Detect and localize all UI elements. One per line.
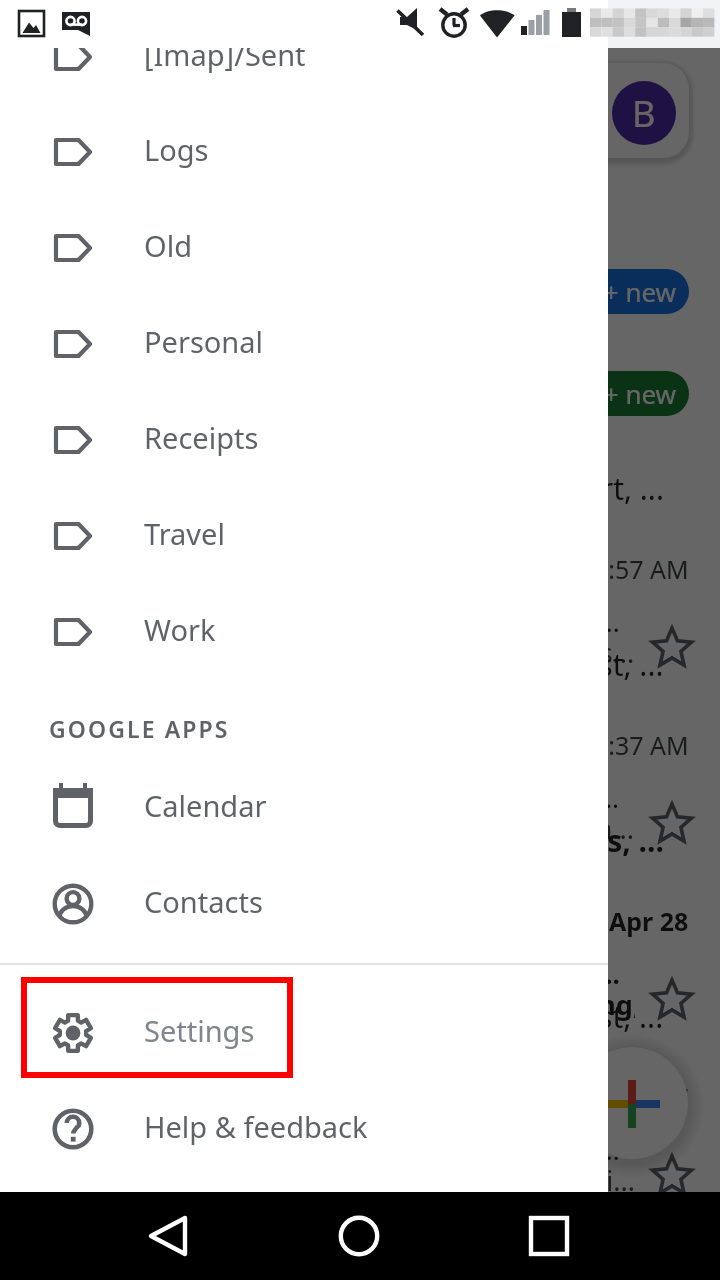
button[interactable]: 99+ new (500, 269, 689, 314)
button[interactable]: Contacts (0, 853, 608, 949)
staticText: Reading list: Compose UI stories, ri... (171, 1162, 635, 1199)
button[interactable]: Star (646, 622, 698, 674)
staticText: Your sign-in settings .. (350, 604, 620, 639)
staticText: Logs (144, 130, 209, 169)
staticText: GOOGLE APPS (49, 713, 230, 744)
staticText: [Imap]/Sent (144, 35, 306, 74)
button[interactable]: Travel (0, 485, 608, 581)
staticText: Contacts (144, 882, 263, 921)
button[interactable]: B (32, 63, 689, 158)
staticText: Stories for you ... (414, 1132, 620, 1167)
staticText: Travel (144, 514, 225, 553)
button[interactable]: Calendar (0, 757, 608, 853)
staticText: Apr 27 (612, 1080, 689, 1114)
button[interactable]: Recents (509, 1196, 589, 1276)
button[interactable]: Compose (576, 1047, 688, 1159)
staticText: Settings (144, 1011, 255, 1050)
button[interactable]: Personal (0, 293, 608, 389)
staticText: LinkedIn Job Alerts, ... (338, 820, 664, 861)
staticText: Medium Daily Digest, ... (331, 996, 664, 1037)
staticText: Old (144, 226, 192, 265)
button[interactable]: Star (646, 1150, 698, 1202)
button[interactable]: Medium Daily Digest, ... (0, 984, 720, 1160)
staticText: Top questions this week ... (299, 780, 620, 815)
button[interactable]: Star (646, 798, 698, 850)
staticText: Personal (144, 322, 263, 361)
button[interactable]: Home (319, 1196, 399, 1276)
staticText: Receipts (144, 418, 259, 457)
button[interactable]: Work (0, 581, 608, 677)
button[interactable]: Stack Overflow Digest, ... (0, 632, 720, 808)
staticText: 99+ new (574, 376, 677, 411)
button[interactable]: [Imap]/Sent (0, 6, 608, 102)
button[interactable]: Star (646, 974, 698, 1026)
button[interactable]: 99+ new (500, 371, 689, 416)
button[interactable]: LinkedIn Job Alerts, ... (0, 808, 720, 984)
button[interactable]: Back (129, 1196, 209, 1276)
button[interactable]: Receipts (0, 389, 608, 485)
staticText: Apr 28 (609, 904, 689, 938)
staticText: Work (144, 610, 216, 649)
staticText: 8:57 AM (594, 552, 689, 586)
staticText: Google Workspace Support, ... (239, 468, 664, 509)
staticText: Review the changes in a few minutes... (147, 634, 635, 671)
staticText: Kotlin, Compose and more discussion... (136, 810, 635, 847)
staticText: Stack Overflow Digest, ... (316, 644, 664, 685)
staticText: Help & feedback (144, 1107, 368, 1146)
staticText: New jobs for you ... (373, 956, 620, 991)
staticText: B (632, 89, 656, 138)
staticText: Calendar (144, 786, 267, 825)
button[interactable]: Help & feedback (0, 1078, 608, 1174)
button[interactable]: Logs (0, 101, 608, 197)
staticText: 99+ new (574, 274, 677, 309)
staticText: Android Engineer, Mobile Engineering, ..… (128, 986, 635, 1023)
button[interactable]: Google Workspace Support, ... (0, 456, 720, 632)
button[interactable]: Settings (0, 982, 608, 1078)
button[interactable]: Old (0, 197, 608, 293)
staticText: 7:37 AM (594, 728, 689, 762)
